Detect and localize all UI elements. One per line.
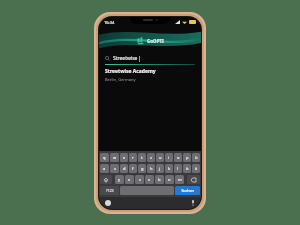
button[interactable]: q — [100, 153, 109, 162]
staticText: o — [177, 155, 180, 160]
button[interactable]: l — [174, 164, 182, 173]
staticText: n — [168, 177, 171, 182]
staticText: l — [177, 166, 179, 171]
staticText: a — [103, 166, 106, 171]
staticText: i — [168, 155, 170, 160]
staticText: x — [128, 177, 131, 182]
button[interactable]: p — [183, 153, 191, 162]
button[interactable]: Emoji — [105, 200, 111, 206]
staticText: Streetwise — [113, 55, 138, 62]
other: Shift — [104, 178, 108, 182]
button[interactable]: x — [125, 175, 134, 184]
button[interactable]: h — [147, 164, 155, 173]
staticText: r — [132, 155, 134, 160]
button[interactable]: o — [174, 153, 182, 162]
staticText: 16:34 — [104, 20, 115, 25]
staticText: Streetwise Academy — [105, 68, 156, 75]
button[interactable]: Shift — [100, 175, 112, 184]
button[interactable]: k — [165, 164, 173, 173]
button[interactable]: j — [156, 164, 164, 173]
other: Backspace — [191, 178, 196, 182]
button[interactable]: r — [129, 153, 137, 162]
staticText: e — [123, 155, 126, 160]
button[interactable]: Suchen — [175, 186, 200, 195]
staticText: w — [113, 155, 117, 160]
button[interactable]: b — [155, 175, 164, 184]
staticText: t — [141, 155, 143, 160]
button[interactable]: Backspace — [187, 175, 200, 184]
button[interactable]: e — [120, 153, 128, 162]
button[interactable]: d — [120, 164, 128, 173]
staticText: GoOPTI — [147, 38, 164, 44]
button[interactable]: Search — [105, 53, 195, 64]
button[interactable]: u — [156, 153, 164, 162]
button[interactable]: t — [138, 153, 146, 162]
staticText: ä — [195, 166, 198, 171]
button[interactable]: f — [129, 164, 137, 173]
button[interactable]: s — [110, 164, 119, 173]
button[interactable]: c — [135, 175, 144, 184]
button[interactable]: a — [100, 164, 109, 173]
button[interactable]: m — [175, 175, 184, 184]
button[interactable]: n — [165, 175, 174, 184]
staticText: p — [186, 155, 189, 160]
other: Search — [105, 56, 110, 61]
button[interactable]: Streetwise Academy — [99, 65, 201, 85]
staticText: y — [118, 177, 121, 182]
button[interactable]: ä — [192, 164, 200, 173]
staticText: d — [123, 166, 126, 171]
staticText: k — [168, 166, 171, 171]
staticText: m — [178, 177, 182, 182]
button[interactable]: y — [115, 175, 124, 184]
staticText: Suchen — [181, 188, 194, 193]
staticText: ö — [186, 166, 189, 171]
staticText: j — [159, 166, 161, 171]
staticText: b — [158, 177, 161, 182]
staticText: ü — [195, 155, 198, 160]
staticText: s — [114, 166, 116, 171]
staticText: z — [150, 155, 152, 160]
staticText: c — [139, 177, 141, 182]
staticText: ?123 — [106, 188, 114, 193]
staticText: Berlin, Germany — [105, 77, 136, 82]
staticText: f — [132, 166, 134, 171]
button[interactable]: ü — [192, 153, 200, 162]
staticText: h — [150, 166, 153, 171]
button[interactable]: v — [145, 175, 154, 184]
button[interactable]: i — [165, 153, 173, 162]
button[interactable]: w — [110, 153, 119, 162]
staticText: v — [148, 177, 151, 182]
button[interactable]: ö — [183, 164, 191, 173]
staticText: g — [141, 166, 144, 171]
button[interactable]: z — [147, 153, 155, 162]
staticText: q — [103, 155, 106, 160]
staticText: u — [159, 155, 162, 160]
button[interactable]: ?123 — [100, 186, 119, 195]
button[interactable]: g — [138, 164, 146, 173]
button[interactable]: Voice input — [191, 200, 195, 206]
